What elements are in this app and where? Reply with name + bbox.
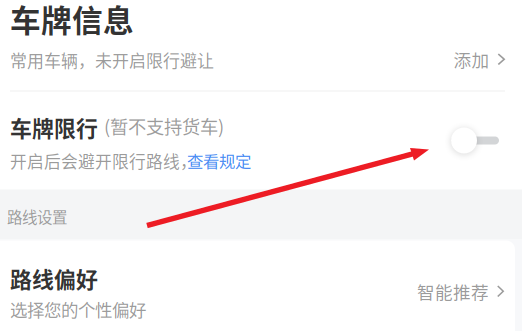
button[interactable]: 车牌信息 [0, 0, 522, 90]
staticText: 查看规定 [187, 149, 251, 172]
button[interactable]: 路线偏好 [0, 239, 522, 331]
staticText: (暂不支持货车) [104, 113, 224, 139]
staticText: 智能推荐 [417, 278, 489, 304]
staticText: 路线偏好 [10, 262, 98, 294]
staticText: 车牌信息 [10, 0, 134, 41]
staticText: 路线设置 [7, 205, 67, 228]
button[interactable]: 车牌限行 [451, 127, 499, 153]
staticText: 开启后会避开限行路线， [10, 148, 197, 173]
staticText: 常用车辆，未开启限行避让 [10, 47, 214, 72]
staticText: 选择您的个性偏好 [10, 296, 146, 322]
staticText: 添加 [453, 46, 489, 72]
staticText: 车牌限行 [10, 111, 98, 143]
